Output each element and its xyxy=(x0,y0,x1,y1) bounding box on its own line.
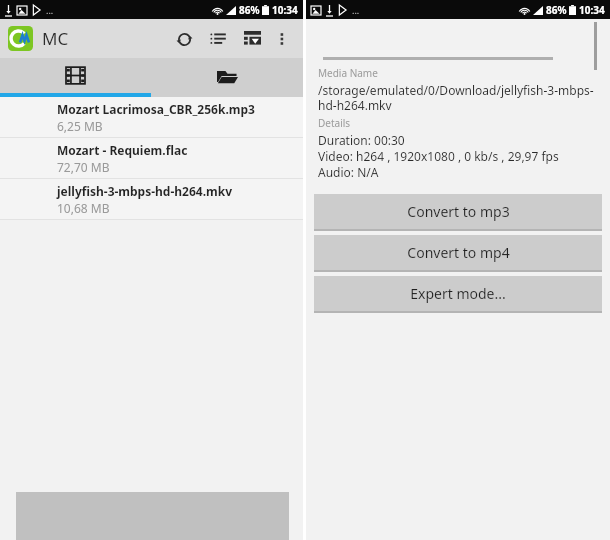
staticText: ... xyxy=(46,4,54,16)
button[interactable]: More options xyxy=(269,26,295,52)
staticText: jellyfish-3-mbps-hd-h264.mkv xyxy=(57,183,233,199)
staticText: Audio: N/A xyxy=(318,164,379,180)
staticText: 86% xyxy=(546,3,567,17)
button[interactable]: Media tab xyxy=(0,58,151,93)
staticText: Expert mode... xyxy=(410,284,506,303)
staticText: 86% xyxy=(239,3,260,17)
button[interactable]: Mozart - Requiem.flac xyxy=(0,138,303,178)
button[interactable]: Refresh xyxy=(167,22,201,56)
staticText: Convert to mp4 xyxy=(407,243,510,262)
staticText: Video: h264 , 1920x1080 , 0 kb/s , 29,97… xyxy=(318,148,559,164)
staticText: Mozart Lacrimosa_CBR_256k.mp3 xyxy=(57,101,255,117)
button[interactable]: Expert mode... xyxy=(314,276,602,313)
staticText: 6,25 MB xyxy=(57,118,103,134)
staticText: Convert to mp3 xyxy=(407,202,510,221)
button[interactable]: Mozart Lacrimosa_CBR_256k.mp3 xyxy=(0,97,303,137)
button[interactable]: jellyfish-3-mbps-hd-h264.mkv xyxy=(0,179,303,219)
staticText: MC xyxy=(42,27,69,50)
staticText: Details xyxy=(318,116,351,130)
button[interactable]: Import xyxy=(235,22,269,56)
staticText: 10:34 xyxy=(579,3,605,17)
staticText: Media Name xyxy=(318,66,378,80)
staticText: 10:34 xyxy=(272,3,298,17)
staticText: Mozart - Requiem.flac xyxy=(57,142,188,158)
button[interactable]: Queue xyxy=(201,22,235,56)
staticText: 72,70 MB xyxy=(57,159,110,175)
button[interactable]: Convert to mp3 xyxy=(314,194,602,231)
staticText: /storage/emulated/0/Download/jellyfish-3… xyxy=(318,82,600,113)
staticText: ... xyxy=(352,4,360,16)
staticText: Duration: 00:30 xyxy=(318,132,405,148)
staticText: 10,68 MB xyxy=(57,200,110,216)
button[interactable]: Convert to mp4 xyxy=(314,235,602,272)
button[interactable]: Folders tab xyxy=(151,58,303,93)
